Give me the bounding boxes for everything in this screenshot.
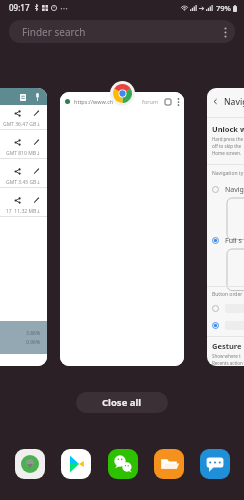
button[interactable]: Back	[207, 88, 244, 366]
button[interactable]: Messages	[198, 447, 231, 480]
staticText: off to skip the	[212, 143, 242, 149]
other: Back	[212, 98, 219, 105]
button[interactable]: Chrome	[110, 81, 135, 106]
button[interactable]: GMT 36.47 GB↓	[0, 88, 47, 366]
staticText: Finder search	[22, 25, 86, 39]
staticText: forum	[142, 98, 159, 105]
button[interactable]: Finder search	[9, 20, 235, 43]
staticText: Close all	[102, 396, 142, 409]
button[interactable]	[207, 302, 244, 314]
button[interactable]: Full s	[207, 234, 244, 247]
button[interactable]: My Files	[152, 447, 185, 480]
staticText: Gesture hi	[212, 341, 244, 351]
staticText: 3.86%	[26, 330, 41, 337]
button[interactable]: More options	[215, 22, 235, 42]
other: Tabs	[165, 99, 171, 105]
staticText: Unlock wit	[212, 124, 244, 134]
button[interactable]: 17 11.32 MB↓	[0, 192, 47, 221]
staticText: 17 11.32 MB↓	[6, 208, 41, 215]
staticText: 09:17	[9, 2, 30, 13]
button[interactable]	[207, 319, 244, 331]
button[interactable]: GMT 3.45 GB↓	[0, 163, 47, 192]
staticText: 79%	[216, 3, 231, 13]
staticText: 0.96%	[26, 339, 41, 346]
button[interactable]: GMT 810 MB↓	[0, 134, 47, 163]
button[interactable]: Kiwi Browser	[13, 447, 46, 480]
button[interactable]: Close all	[76, 392, 168, 413]
button[interactable]: Play Store	[59, 447, 92, 480]
button[interactable]: WeChat	[106, 447, 139, 480]
staticText: Button order	[212, 291, 243, 298]
staticText: https://www.ch	[74, 98, 114, 105]
staticText: Recents action	[212, 360, 243, 366]
staticText: Navig	[225, 185, 244, 195]
other: Chrome menu	[177, 98, 180, 106]
staticText: GMT 810 MB↓	[6, 150, 41, 157]
button[interactable]: https://www.ch	[60, 92, 184, 366]
staticText: Navigation ty	[212, 170, 244, 177]
staticText: GMT 36.47 GB↓	[3, 121, 41, 128]
button[interactable]: GMT 36.47 GB↓	[0, 105, 47, 134]
staticText: Home screen.	[212, 150, 242, 156]
staticText: Hard press the	[212, 136, 244, 142]
staticText: GMT 3.45 GB↓	[6, 179, 41, 186]
staticText: Full s	[225, 236, 242, 246]
staticText: Show where t	[212, 353, 241, 359]
button[interactable]: Navig	[207, 183, 244, 196]
staticText: Naviga	[224, 96, 244, 108]
